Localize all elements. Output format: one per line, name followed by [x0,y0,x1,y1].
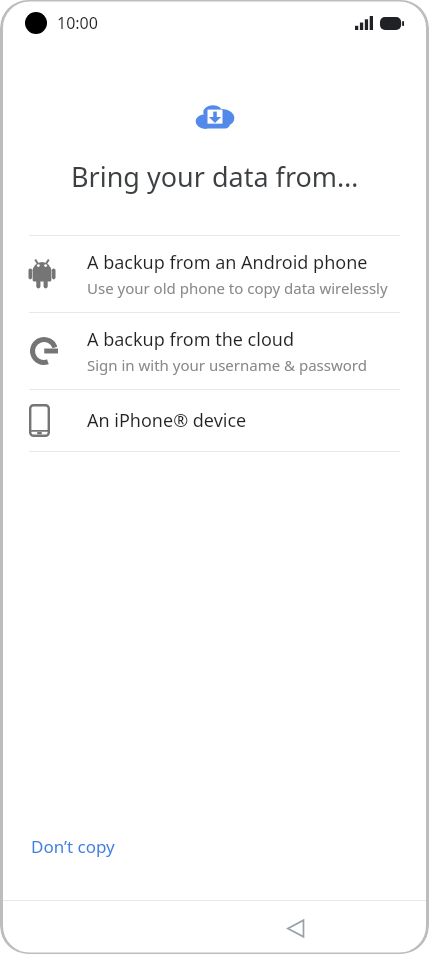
button[interactable]: A backup from an Android phone [3,236,426,312]
button[interactable]: Back [272,905,318,951]
staticText: A backup from an Android phone [87,250,368,275]
staticText: An iPhone® device [87,408,247,433]
staticText: A backup from the cloud [87,327,294,352]
staticText: Don’t copy [31,835,115,858]
button[interactable]: An iPhone® device [3,390,426,451]
button[interactable]: A backup from the cloud [3,313,426,389]
staticText: Use your old phone to copy data wireless… [87,278,388,298]
staticText: Sign in with your username & password [87,355,367,375]
staticText: 10:00 [57,12,98,34]
staticText: Bring your data from… [71,158,359,195]
button[interactable]: Don’t copy [17,825,129,868]
